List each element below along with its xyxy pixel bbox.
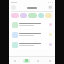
button[interactable]: Category <box>11 13 19 18</box>
button[interactable]: Explore <box>23 57 30 64</box>
button[interactable] <box>11 30 53 39</box>
button[interactable] <box>11 40 53 49</box>
button[interactable]: Category <box>20 13 27 18</box>
button[interactable]: Category <box>28 13 37 18</box>
button[interactable]: Search <box>48 5 53 10</box>
button[interactable]: Category <box>38 13 44 18</box>
button[interactable]: Profile <box>11 5 16 10</box>
button[interactable]: Home <box>11 57 18 64</box>
button[interactable]: Profile <box>46 57 53 64</box>
button[interactable]: Saved <box>34 57 41 64</box>
button[interactable] <box>11 20 53 29</box>
button[interactable]: Category <box>45 13 52 18</box>
